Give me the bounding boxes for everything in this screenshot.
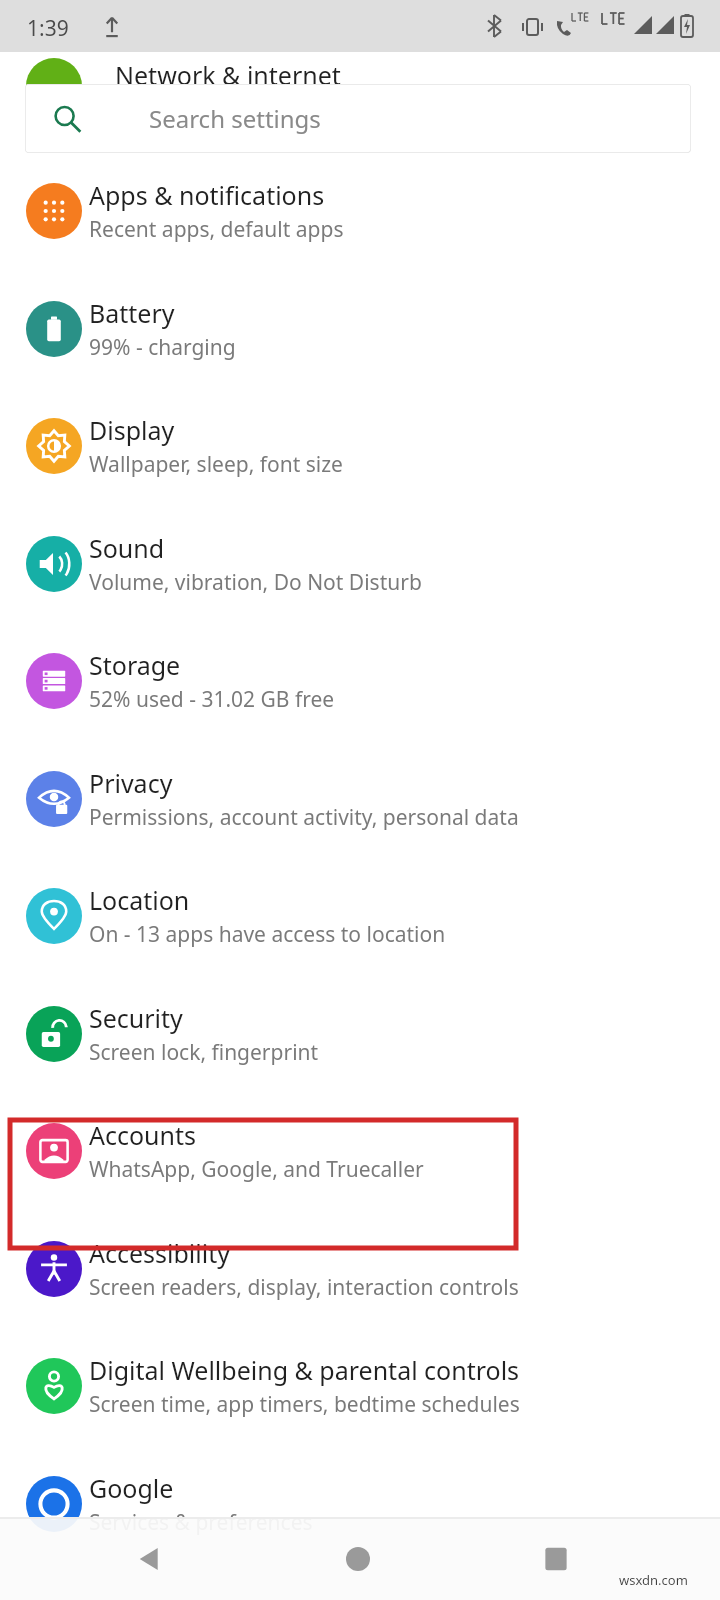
staticText: Screen lock, fingerprint [89, 1038, 319, 1067]
button[interactable]: Back [114, 1518, 186, 1600]
staticText: WhatsApp, Google, and Truecaller [89, 1155, 424, 1184]
button[interactable]: Accessibility [0, 1210, 720, 1328]
staticText: Display [89, 413, 175, 447]
staticText: Battery [89, 296, 175, 330]
staticText: Volume, vibration, Do Not Disturb [89, 568, 422, 597]
staticText: On - 13 apps have access to location [89, 920, 446, 949]
staticText: 99% - charging [89, 333, 236, 362]
staticText: Permissions, account activity, personal … [89, 803, 519, 832]
staticText: Services & preferences [89, 1508, 313, 1537]
staticText: Recent apps, default apps [89, 215, 344, 244]
staticText: Screen readers, display, interaction con… [89, 1273, 519, 1302]
staticText: Sound [89, 531, 165, 565]
button[interactable]: Recent apps [520, 1518, 592, 1600]
staticText: Privacy [89, 766, 173, 800]
staticText: Accessibility [89, 1236, 230, 1270]
button[interactable]: Search settings [25, 84, 691, 153]
staticText: Storage [89, 648, 181, 682]
button[interactable]: Storage [0, 622, 720, 740]
button[interactable]: Digital Wellbeing & parental controls [0, 1327, 720, 1445]
staticText: wsxdn.com [619, 1571, 688, 1589]
staticText: Accounts [89, 1118, 197, 1152]
button[interactable]: Privacy [0, 740, 720, 858]
staticText: Screen time, app timers, bedtime schedul… [89, 1390, 520, 1419]
button[interactable]: Security [0, 975, 720, 1093]
button[interactable]: Battery [0, 270, 720, 388]
staticText: 52% used - 31.02 GB free [89, 685, 335, 714]
staticText: Wallpaper, sleep, font size [89, 450, 343, 479]
staticText: Search settings [149, 102, 321, 135]
staticText: Apps & notifications [89, 178, 325, 212]
button[interactable]: Location [0, 857, 720, 975]
button[interactable]: Display [0, 387, 720, 505]
button[interactable]: Google [0, 1445, 720, 1563]
button[interactable]: Accounts [0, 1092, 720, 1210]
staticText: Google [89, 1471, 174, 1505]
button[interactable]: Sound [0, 505, 720, 623]
staticText: Digital Wellbeing & parental controls [89, 1353, 520, 1387]
button[interactable]: Home [322, 1518, 394, 1600]
staticText: 1:39 [27, 14, 69, 43]
staticText: Security [89, 1001, 183, 1035]
staticText: Location [89, 883, 190, 917]
staticText: Network & internet [115, 58, 341, 92]
button[interactable]: Apps & notifications [0, 152, 720, 270]
